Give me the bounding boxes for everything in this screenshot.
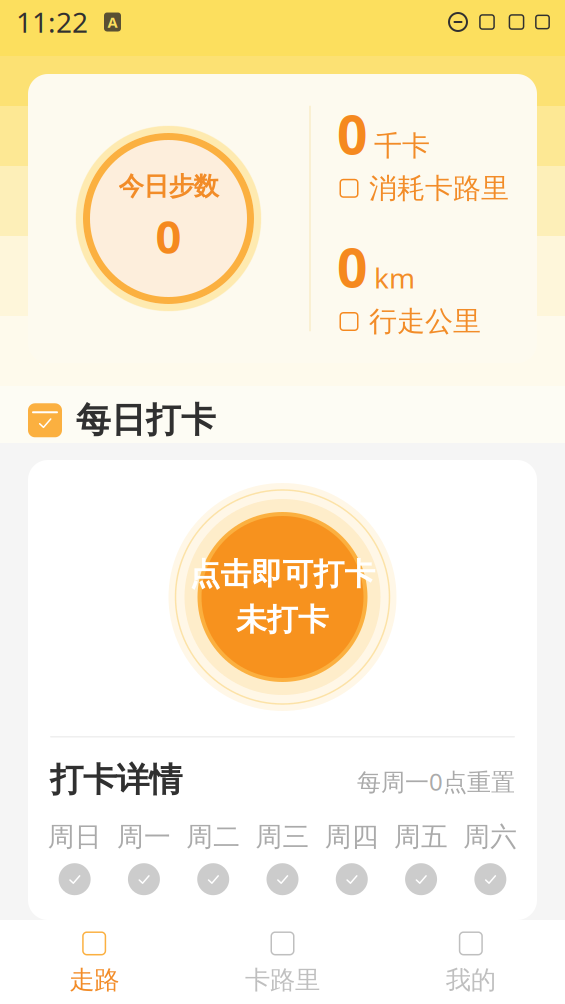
staticText: 走路 [69,964,119,995]
staticText: 未打卡 [236,601,329,639]
staticText: 卡路里 [245,964,320,995]
button[interactable]: 走路 [0,920,188,1004]
staticText: 0 [155,206,181,266]
staticText: 今日步数 [118,171,218,202]
staticText: 周一 [117,820,171,853]
staticText: 0 [337,98,368,169]
staticText: 每日打卡 [76,399,216,442]
staticText: 0 [337,231,368,302]
button[interactable]: 卡路里 [188,920,377,1004]
staticText: A [107,12,117,32]
staticText: 千卡 [374,129,430,163]
staticText: 周二 [186,820,240,853]
staticText: 周四 [325,820,379,853]
button[interactable]: 点击即可打卡 [167,482,397,712]
staticText: 点击即可打卡 [189,555,375,593]
staticText: 11:22 [16,3,88,41]
staticText: 消耗卡路里 [369,171,509,205]
staticText: 周五 [394,820,448,853]
staticText: 周三 [255,820,309,853]
staticText: 每周一0点重置 [357,766,515,797]
staticText: km [374,259,415,296]
staticText: 行走公里 [369,304,481,339]
staticText: 我的 [446,964,496,995]
staticText: 周六 [463,820,517,853]
button[interactable]: 我的 [377,920,565,1004]
staticText: 打卡详情 [50,759,182,800]
staticText: 周日 [48,820,102,853]
